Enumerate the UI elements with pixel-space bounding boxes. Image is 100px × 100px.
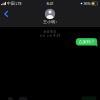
staticText: 36% bbox=[83, 1, 90, 6]
staticText: 王小明 bbox=[43, 19, 55, 24]
button[interactable]: Back bbox=[2, 8, 11, 19]
staticText: 8:41 bbox=[46, 1, 53, 6]
staticText: 中国 bbox=[7, 1, 15, 6]
button[interactable]: 王小明 bbox=[43, 9, 57, 24]
button[interactable]: 在家吗？ bbox=[76, 38, 99, 46]
button[interactable]: Attach bbox=[8, 97, 13, 100]
button[interactable]: Send bbox=[81, 96, 96, 100]
staticText: 短信/彩信 bbox=[43, 30, 56, 33]
staticText: LTE bbox=[16, 1, 22, 6]
staticText: 在家吗？ bbox=[79, 39, 95, 44]
button[interactable]: Message field bbox=[19, 97, 27, 100]
staticText: 今天 上午 8:39 bbox=[39, 34, 60, 37]
